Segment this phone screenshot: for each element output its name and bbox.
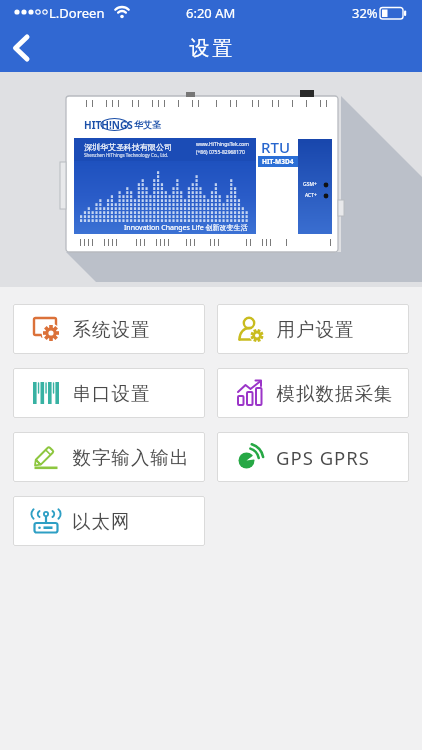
staticText: www.HiThingsTek.com <box>196 141 250 148</box>
staticText: 6:20 AM <box>186 4 236 22</box>
button[interactable] <box>0 26 44 70</box>
button[interactable]: GPS GPRS <box>217 432 409 482</box>
button[interactable]: 模拟数据采集 <box>217 368 409 418</box>
button[interactable]: 数字输入输出 <box>13 432 205 482</box>
staticText: HIT-M3D4 <box>262 157 294 166</box>
staticText: 系统设置 <box>72 318 150 341</box>
staticText: 华艾圣 <box>134 119 161 130</box>
staticText: (+86) 0755-82968170 <box>196 149 245 156</box>
staticText: GPS GPRS <box>276 445 370 470</box>
staticText: 32% <box>352 4 378 22</box>
button[interactable]: 以太网 <box>13 496 205 546</box>
staticText: GSM+ <box>303 181 317 188</box>
staticText: 用户设置 <box>276 318 354 341</box>
staticText: RTU <box>261 137 290 157</box>
staticText: 数字输入输出 <box>72 446 189 469</box>
staticText: L.Doreen <box>49 4 105 22</box>
staticText: 以太网 <box>72 510 131 533</box>
button[interactable]: 用户设置 <box>217 304 409 354</box>
staticText: 设置 <box>188 36 234 61</box>
staticText: HITH!NGS <box>84 118 133 132</box>
staticText: ACT+ <box>305 192 317 199</box>
staticText: 模拟数据采集 <box>276 382 393 405</box>
staticText: Shenzhen HiThings Technology Co., Ltd. <box>84 152 169 158</box>
staticText: 串口设置 <box>72 382 150 405</box>
staticText: 深圳华艾圣科技有限公司 <box>84 142 172 152</box>
staticText: Innovation Changes Life 创新改变生活 <box>124 223 248 233</box>
button[interactable]: 串口设置 <box>13 368 205 418</box>
button[interactable]: 系统设置 <box>13 304 205 354</box>
